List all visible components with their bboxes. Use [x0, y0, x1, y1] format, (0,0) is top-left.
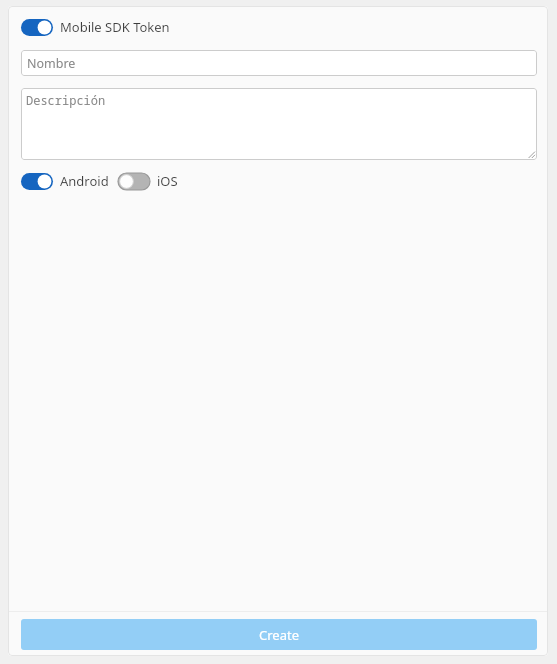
- staticText: Mobile SDK Token: [60, 18, 170, 36]
- staticText: Descripción: [26, 92, 106, 108]
- button[interactable]: Nombre: [21, 50, 537, 76]
- button[interactable]: iOS disabled: [118, 173, 150, 190]
- button[interactable]: Descripción: [21, 88, 537, 160]
- button[interactable]: Mobile SDK Token enabled: [21, 19, 53, 36]
- button[interactable]: Mobile SDK Token enabled: [21, 18, 170, 36]
- button[interactable]: Android enabled: [21, 172, 109, 190]
- staticText: iOS: [157, 172, 178, 190]
- staticText: Android: [60, 172, 109, 190]
- button[interactable]: Android enabled: [21, 173, 53, 190]
- button[interactable]: Create: [21, 619, 537, 650]
- button[interactable]: iOS disabled: [118, 172, 178, 190]
- staticText: Create: [259, 626, 299, 644]
- staticText: Nombre: [27, 55, 76, 72]
